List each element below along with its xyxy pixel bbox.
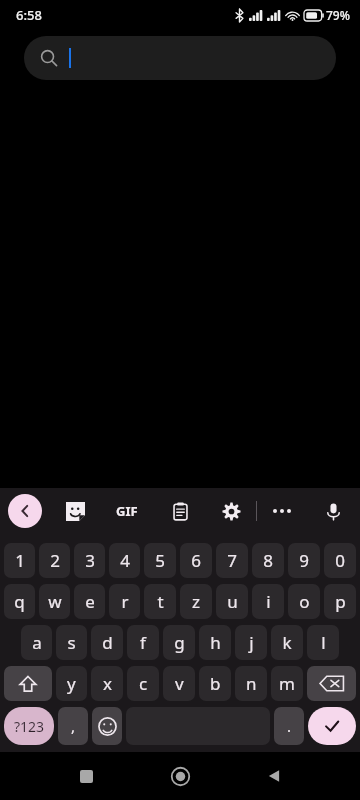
button[interactable]: 7 bbox=[216, 543, 248, 578]
staticText: 79% bbox=[326, 7, 350, 23]
button[interactable]: Settings bbox=[214, 494, 248, 528]
staticText: h bbox=[210, 631, 221, 654]
button[interactable]: . bbox=[274, 707, 304, 745]
button[interactable]: 4 bbox=[109, 543, 140, 578]
button[interactable] bbox=[24, 36, 336, 80]
button[interactable]: Back bbox=[8, 494, 42, 528]
button[interactable]: j bbox=[235, 625, 267, 660]
button[interactable]: a bbox=[21, 625, 52, 660]
staticText: 7 bbox=[227, 549, 237, 572]
staticText: o bbox=[299, 590, 310, 613]
button[interactable]: i bbox=[252, 584, 284, 619]
staticText: p bbox=[335, 590, 346, 613]
staticText: b bbox=[210, 672, 221, 695]
button[interactable]: l bbox=[307, 625, 339, 660]
button[interactable]: Recents bbox=[64, 754, 108, 798]
staticText: e bbox=[85, 590, 95, 613]
staticText: w bbox=[48, 590, 62, 613]
button[interactable]: e bbox=[74, 584, 105, 619]
button[interactable]: b bbox=[199, 666, 231, 701]
button[interactable]: w bbox=[39, 584, 70, 619]
button[interactable]: Enter bbox=[308, 707, 356, 745]
button[interactable]: More options bbox=[265, 494, 299, 528]
button[interactable]: r bbox=[109, 584, 140, 619]
staticText: 1 bbox=[15, 549, 25, 572]
staticText: t bbox=[157, 590, 164, 613]
staticText: q bbox=[14, 590, 25, 613]
staticText: 2 bbox=[50, 549, 60, 572]
button[interactable]: 9 bbox=[288, 543, 320, 578]
staticText: , bbox=[71, 716, 76, 736]
button[interactable]: s bbox=[56, 625, 87, 660]
staticText: c bbox=[139, 672, 148, 695]
button[interactable]: Back bbox=[252, 754, 296, 798]
button[interactable]: m bbox=[271, 666, 303, 701]
staticText: j bbox=[249, 631, 254, 654]
button[interactable]: 2 bbox=[39, 543, 70, 578]
staticText: v bbox=[175, 672, 184, 695]
button[interactable]: c bbox=[127, 666, 159, 701]
staticText: y bbox=[67, 672, 76, 695]
staticText: u bbox=[227, 590, 238, 613]
button[interactable]: u bbox=[216, 584, 248, 619]
staticText: f bbox=[140, 631, 146, 654]
staticText: 4 bbox=[120, 549, 130, 572]
button[interactable]: q bbox=[4, 584, 35, 619]
button[interactable]: t bbox=[144, 584, 176, 619]
staticText: i bbox=[266, 590, 271, 613]
button[interactable]: 5 bbox=[144, 543, 176, 578]
staticText: g bbox=[174, 631, 185, 654]
button[interactable]: o bbox=[288, 584, 320, 619]
staticText: 6:58 bbox=[16, 6, 42, 24]
button[interactable]: y bbox=[56, 666, 87, 701]
button[interactable]: n bbox=[235, 666, 267, 701]
button[interactable]: v bbox=[163, 666, 195, 701]
button[interactable]: 6 bbox=[180, 543, 212, 578]
button[interactable]: p bbox=[324, 584, 356, 619]
staticText: . bbox=[287, 716, 292, 736]
button[interactable]: Stickers bbox=[58, 494, 92, 528]
staticText: n bbox=[246, 672, 257, 695]
button[interactable]: Voice input bbox=[316, 494, 350, 528]
staticText: 5 bbox=[155, 549, 165, 572]
button[interactable]: k bbox=[271, 625, 303, 660]
button[interactable]: Clipboard bbox=[163, 494, 197, 528]
staticText: 0 bbox=[335, 549, 345, 572]
button[interactable]: z bbox=[180, 584, 212, 619]
button[interactable]: 3 bbox=[74, 543, 105, 578]
staticText: GIF bbox=[116, 502, 138, 520]
staticText: a bbox=[32, 631, 42, 654]
button[interactable]: 0 bbox=[324, 543, 356, 578]
staticText: r bbox=[121, 590, 129, 613]
button[interactable]: GIF bbox=[108, 492, 146, 530]
staticText: 9 bbox=[299, 549, 309, 572]
button[interactable]: Emoji bbox=[92, 707, 122, 745]
staticText: k bbox=[282, 631, 292, 654]
button[interactable]: g bbox=[163, 625, 195, 660]
button[interactable]: Home bbox=[158, 754, 202, 798]
button[interactable]: ?123 bbox=[4, 707, 54, 745]
staticText: l bbox=[321, 631, 326, 654]
button[interactable]: 8 bbox=[252, 543, 284, 578]
button[interactable]: 1 bbox=[4, 543, 35, 578]
staticText: 3 bbox=[85, 549, 95, 572]
staticText: ?123 bbox=[14, 717, 45, 736]
button[interactable]: d bbox=[91, 625, 123, 660]
button[interactable]: h bbox=[199, 625, 231, 660]
staticText: 6 bbox=[191, 549, 201, 572]
staticText: z bbox=[192, 590, 200, 613]
button[interactable]: f bbox=[127, 625, 159, 660]
button[interactable]: Backspace bbox=[307, 666, 356, 701]
button[interactable]: x bbox=[91, 666, 123, 701]
staticText: m bbox=[279, 672, 295, 695]
staticText: d bbox=[102, 631, 113, 654]
staticText: x bbox=[103, 672, 112, 695]
button[interactable]: Shift bbox=[4, 666, 52, 701]
staticText: 8 bbox=[263, 549, 273, 572]
staticText: s bbox=[67, 631, 76, 654]
button[interactable]: , bbox=[58, 707, 88, 745]
